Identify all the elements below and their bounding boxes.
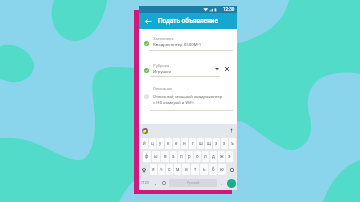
button[interactable]: щ (205, 138, 212, 149)
staticText: ю (220, 167, 224, 172)
button[interactable]: т (191, 164, 199, 175)
button[interactable]: г (189, 138, 196, 149)
button[interactable]: ы (152, 151, 160, 162)
staticText: ф (145, 154, 149, 159)
staticText: щ (207, 141, 211, 146)
button[interactable]: й (140, 138, 148, 149)
staticText: и (185, 167, 188, 172)
staticText: у (159, 141, 162, 146)
button[interactable]: ж (218, 151, 225, 162)
staticText: ц (151, 141, 154, 146)
button[interactable]: б (209, 164, 217, 175)
staticText: Подать объявление (158, 17, 218, 25)
staticText: а (172, 154, 175, 159)
staticText: р (188, 154, 191, 159)
button[interactable]: Эмодзи (159, 177, 168, 189)
button[interactable]: д (210, 151, 217, 162)
staticText: б (212, 167, 215, 172)
button[interactable]: , (151, 177, 159, 189)
staticText: 12:30 (223, 7, 235, 12)
staticText: Отличный, мощный квадрокоптер (153, 94, 223, 99)
button[interactable]: ь (200, 164, 208, 175)
button[interactable]: а (170, 151, 177, 162)
button[interactable]: л (202, 151, 209, 162)
button[interactable]: Очистить (223, 65, 231, 73)
staticText: с (168, 167, 171, 172)
button[interactable]: у (157, 138, 164, 149)
button[interactable]: Раскрыть список (213, 65, 221, 73)
button[interactable]: Shift (139, 164, 149, 175)
button[interactable]: о (194, 151, 201, 162)
staticText: л (204, 154, 207, 159)
button[interactable]: э (226, 151, 233, 162)
button[interactable]: е (173, 138, 180, 149)
button[interactable]: н (181, 138, 188, 149)
staticText: о (196, 154, 199, 159)
staticText: т (194, 167, 197, 172)
staticText: ?123 (141, 181, 149, 185)
staticText: й (143, 141, 146, 146)
staticText: Заголовок (153, 36, 174, 41)
staticText: Квадрокоптер X500M-1 (153, 42, 202, 47)
button[interactable]: Русский (169, 179, 217, 187)
staticText: Русский (187, 181, 200, 185)
staticText: е (175, 141, 178, 146)
button[interactable]: Ввод (227, 179, 236, 188)
button[interactable]: я (150, 164, 157, 175)
button[interactable]: ф (143, 151, 151, 162)
staticText: ь (203, 167, 206, 172)
staticText: Описание (153, 86, 173, 91)
staticText: ы (154, 154, 158, 159)
staticText: в (164, 154, 167, 159)
staticText: с HD камерой и WiFi (153, 100, 194, 105)
button[interactable]: з (213, 138, 220, 149)
staticText: з (215, 141, 218, 146)
button[interactable]: к (165, 138, 172, 149)
staticText: д (212, 154, 215, 159)
button[interactable]: с (166, 164, 173, 175)
staticText: Рубрика (153, 63, 170, 68)
button[interactable]: х (221, 138, 228, 149)
staticText: н (183, 141, 186, 146)
button[interactable]: ю (218, 164, 226, 175)
staticText: э (228, 154, 231, 159)
button[interactable]: Назад (139, 13, 158, 29)
staticText: х (223, 141, 226, 146)
button[interactable]: м (174, 164, 181, 175)
button[interactable]: ц (149, 138, 156, 149)
staticText: Игрушки (153, 69, 171, 74)
staticText: ъ (231, 141, 234, 146)
button[interactable]: ш (197, 138, 204, 149)
button[interactable]: и (182, 164, 190, 175)
staticText: к (167, 141, 170, 146)
staticText: г (192, 141, 194, 146)
button[interactable]: ?123 (139, 177, 151, 189)
staticText: . (221, 180, 223, 186)
button[interactable]: п (178, 151, 185, 162)
staticText: ж (220, 154, 224, 159)
staticText: я (152, 167, 155, 172)
staticText: п (180, 154, 183, 159)
button[interactable]: р (186, 151, 193, 162)
button[interactable]: ч (158, 164, 165, 175)
staticText: ш (199, 141, 203, 146)
staticText: м (176, 167, 180, 172)
staticText: , (155, 180, 156, 186)
button[interactable]: в (161, 151, 169, 162)
button[interactable]: Backspace (227, 164, 237, 175)
button[interactable]: . (218, 177, 226, 189)
button[interactable]: ъ (229, 138, 236, 149)
staticText: ч (160, 167, 163, 172)
